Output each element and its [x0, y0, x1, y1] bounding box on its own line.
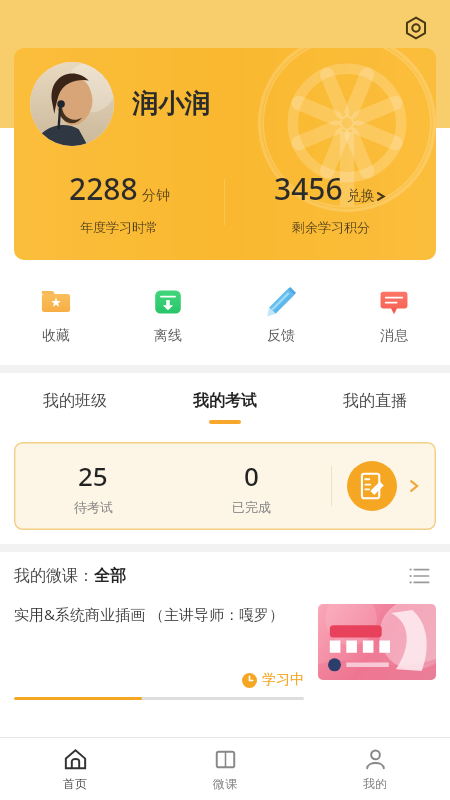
button[interactable]: 25: [14, 442, 436, 530]
button[interactable]: 我的直播: [300, 387, 450, 428]
staticText: 我的微课：: [14, 566, 94, 586]
button[interactable]: 消息: [337, 282, 450, 349]
button[interactable]: 收藏: [0, 282, 112, 349]
button[interactable]: 反馈: [224, 282, 337, 349]
button[interactable]: Settings: [396, 8, 436, 48]
staticText: 25: [78, 458, 108, 493]
staticText: 反馈: [267, 327, 295, 345]
button[interactable]: 我的班级: [0, 387, 150, 428]
staticText: 2288: [69, 168, 138, 209]
button[interactable]: 实用&系统商业插画 （主讲导师：嘎罗）: [0, 600, 450, 700]
staticText: 全部: [94, 566, 126, 586]
staticText: 3456: [274, 168, 343, 209]
staticText: 剩余学习积分: [292, 219, 370, 235]
button[interactable]: 润小润: [14, 48, 436, 260]
staticText: 收藏: [42, 327, 70, 345]
staticText: 分钟: [142, 187, 170, 205]
button[interactable]: 首页: [0, 738, 150, 800]
staticText: 已完成: [232, 499, 271, 515]
staticText: 我的: [363, 776, 387, 791]
button[interactable]: 离线: [112, 282, 224, 349]
button[interactable]: 3456: [225, 168, 436, 235]
staticText: 兑换: [347, 187, 375, 205]
staticText: 年度学习时常: [80, 219, 158, 235]
staticText: 0: [244, 458, 259, 493]
button[interactable]: 2288: [14, 168, 224, 235]
staticText: 学习中: [262, 671, 304, 689]
button[interactable]: 我的: [300, 738, 450, 800]
staticText: 实用&系统商业插画 （主讲导师：嘎罗）: [14, 604, 284, 624]
button[interactable]: 微课: [150, 738, 300, 800]
staticText: 我的直播: [343, 391, 407, 411]
staticText: 待考试: [74, 499, 113, 515]
staticText: 我的班级: [43, 391, 107, 411]
button[interactable]: Filter list: [402, 559, 436, 593]
staticText: 首页: [63, 776, 87, 791]
staticText: 微课: [213, 776, 237, 791]
staticText: 消息: [380, 327, 408, 345]
staticText: 润小润: [132, 88, 210, 121]
staticText: 离线: [154, 327, 182, 345]
button[interactable]: 我的考试: [150, 387, 300, 428]
staticText: 我的考试: [193, 391, 257, 411]
